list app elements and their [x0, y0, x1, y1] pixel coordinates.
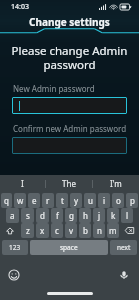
staticText: New Admin password [13, 83, 133, 94]
button[interactable]: g [65, 208, 77, 223]
staticText: f [56, 210, 59, 221]
button[interactable]: j [93, 208, 105, 223]
staticText: c [55, 225, 59, 236]
button[interactable] [12, 137, 127, 154]
button[interactable]: r [42, 193, 54, 208]
button[interactable]: Voice input [118, 269, 130, 281]
button[interactable]: The [46, 175, 92, 192]
staticText: n [97, 225, 102, 236]
staticText: x [40, 225, 45, 236]
button[interactable]: f [51, 208, 63, 223]
button[interactable]: Shift [1, 223, 19, 238]
staticText: g [69, 210, 74, 221]
staticText: t [61, 195, 64, 206]
button[interactable]: e [28, 193, 40, 208]
staticText: h [83, 210, 88, 221]
button[interactable]: space [30, 240, 108, 255]
staticText: Confirm new Admin password [13, 123, 133, 134]
staticText: Please change Admin password [10, 43, 129, 72]
staticText: d [40, 210, 45, 221]
button[interactable] [12, 97, 127, 114]
button[interactable]: q [1, 193, 12, 208]
button[interactable]: x [36, 223, 49, 238]
button[interactable]: h [79, 208, 91, 223]
staticText: next [117, 243, 131, 252]
button[interactable]: I'm [93, 175, 139, 192]
staticText: s [26, 210, 30, 221]
staticText: l [126, 210, 129, 221]
staticText: r [46, 195, 50, 206]
button[interactable]: Emoji [8, 269, 20, 281]
button[interactable]: o [112, 193, 124, 208]
staticText: k [111, 210, 116, 221]
staticText: z [26, 225, 30, 236]
staticText: o [116, 195, 121, 206]
staticText: y [74, 195, 79, 206]
button[interactable]: n [93, 223, 105, 238]
button[interactable]: next [110, 240, 137, 255]
staticText: u [88, 195, 93, 206]
button[interactable]: c [51, 223, 63, 238]
staticText: j [98, 210, 101, 221]
button[interactable]: Backspace [121, 223, 138, 238]
button[interactable]: b [79, 223, 91, 238]
button[interactable]: u [84, 193, 96, 208]
staticText: Change settings [29, 15, 110, 29]
button[interactable]: i [98, 193, 110, 208]
staticText: 123 [9, 243, 21, 252]
button[interactable]: v [65, 223, 77, 238]
staticText: space [60, 243, 78, 252]
button[interactable]: s [21, 208, 34, 223]
staticText: The [62, 178, 76, 189]
staticText: I [21, 178, 24, 189]
button[interactable]: w [14, 193, 26, 208]
button[interactable]: y [70, 193, 82, 208]
button[interactable]: I [0, 175, 45, 192]
button[interactable]: p [126, 193, 138, 208]
button[interactable]: 123 [2, 240, 28, 255]
staticText: i [103, 195, 106, 206]
button[interactable]: l [121, 208, 133, 223]
staticText: b [83, 225, 88, 236]
button[interactable]: m [107, 223, 119, 238]
staticText: p [130, 195, 135, 206]
button[interactable]: k [107, 208, 119, 223]
staticText: e [32, 195, 37, 206]
button[interactable]: a [6, 208, 19, 223]
button[interactable]: t [56, 193, 68, 208]
staticText: 14:03 [11, 2, 29, 12]
staticText: v [69, 225, 74, 236]
staticText: w [17, 195, 24, 206]
staticText: a [10, 210, 15, 221]
staticText: m [109, 225, 117, 236]
button[interactable]: d [36, 208, 49, 223]
button[interactable]: z [21, 223, 34, 238]
staticText: q [4, 195, 9, 206]
staticText: I'm [110, 178, 122, 189]
